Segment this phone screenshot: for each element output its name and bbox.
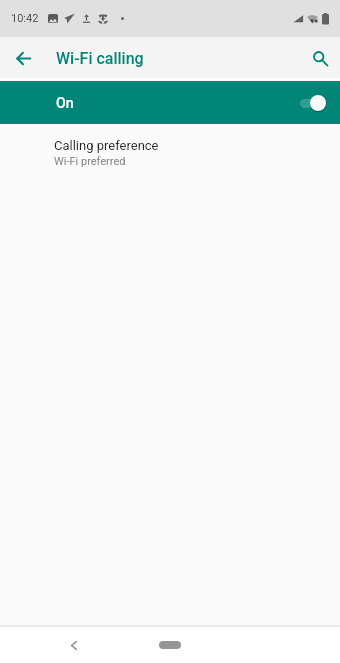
staticText: Wi-Fi preferred: [54, 155, 126, 168]
button[interactable]: Back: [61, 632, 87, 658]
button[interactable]: On: [0, 81, 340, 124]
button[interactable]: Navigate up: [5, 40, 41, 76]
button[interactable]: Calling preference: [0, 126, 340, 182]
staticText: On: [56, 95, 74, 111]
button[interactable]: Search: [302, 40, 338, 76]
staticText: Wi-Fi calling: [56, 49, 144, 68]
button[interactable]: Home: [159, 641, 181, 649]
staticText: 10:42: [11, 12, 39, 25]
staticText: Calling preference: [54, 138, 159, 153]
